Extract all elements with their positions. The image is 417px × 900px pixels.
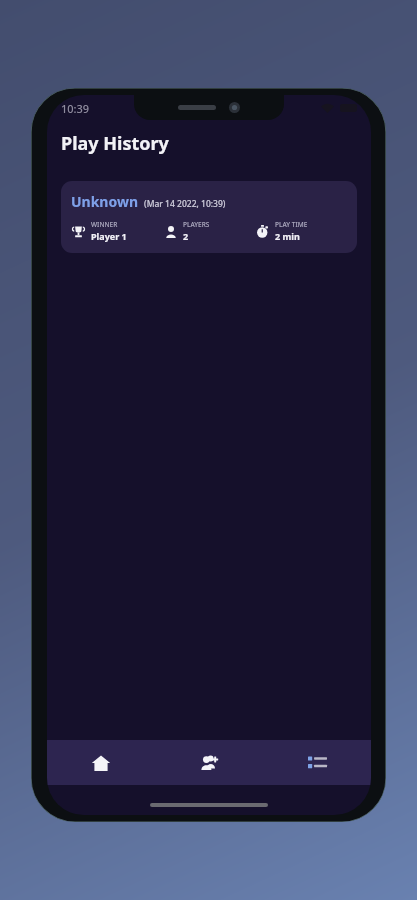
- staticText: Player 1: [91, 230, 127, 242]
- button[interactable]: Add players: [155, 740, 263, 785]
- staticText: (Mar 14 2022, 10:39): [144, 198, 226, 210]
- staticText: 2 min: [275, 230, 300, 242]
- button[interactable]: Unknown: [61, 181, 357, 253]
- button[interactable]: Home: [47, 740, 155, 785]
- button[interactable]: Play history: [263, 740, 371, 785]
- staticText: 2: [183, 230, 189, 242]
- staticText: PLAY TIME: [275, 220, 308, 229]
- staticText: WINNER: [91, 220, 118, 229]
- staticText: 10:39: [61, 101, 90, 116]
- staticText: Play History: [61, 131, 169, 156]
- staticText: PLAYERS: [183, 220, 210, 229]
- staticText: Unknown: [71, 192, 139, 211]
